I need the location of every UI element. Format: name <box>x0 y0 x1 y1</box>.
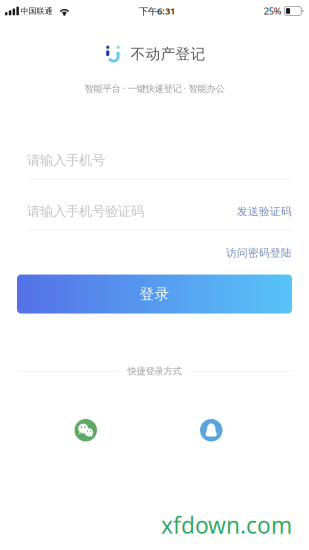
button[interactable]: 登录 <box>17 274 292 313</box>
staticText: 请输入手机号验证码 <box>27 203 144 220</box>
button[interactable]: 访问密码登陆 <box>226 246 309 259</box>
button[interactable]: 发送验证码 <box>237 205 292 218</box>
staticText: 25% <box>264 5 282 17</box>
staticText: 请输入手机号 <box>27 152 105 169</box>
staticText: xfdown.com <box>161 510 292 540</box>
staticText: 中国联通 <box>20 6 52 16</box>
staticText: 智能平台 · 一键快速登记 · 智能办公 <box>84 82 224 94</box>
staticText: 访问密码登陆 <box>226 246 292 259</box>
staticText: 发送验证码 <box>237 205 292 218</box>
button[interactable]: 微信登录 <box>74 419 97 441</box>
staticText: 不动产登记 <box>130 45 205 63</box>
staticText: 登录 <box>139 285 169 303</box>
button[interactable]: QQ 登录 <box>200 419 222 441</box>
staticText: 下午6:31 <box>139 5 175 17</box>
staticText: 快捷登录方式 <box>127 365 181 377</box>
